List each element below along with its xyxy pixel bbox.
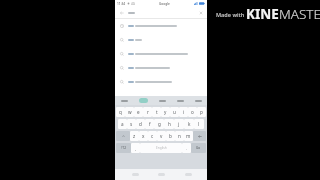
staticText: u [173,109,176,115]
staticText: ?12 [121,146,127,150]
button[interactable]: c [148,131,157,141]
button[interactable] [153,96,171,105]
button[interactable] [115,33,207,47]
button[interactable] [189,96,207,105]
button[interactable]: e [134,107,143,117]
staticText: m [186,133,191,139]
staticText: q [119,109,122,115]
staticText: c [151,133,154,139]
staticText: KINE [246,5,279,23]
staticText: Go [196,146,201,150]
staticText: MASTER [279,5,320,23]
button[interactable]: q [116,107,125,117]
button[interactable]: p [197,107,206,117]
button[interactable]: f [145,119,154,129]
staticText: Google [159,2,170,6]
staticText: a [121,121,124,127]
button[interactable]: . [182,143,191,153]
staticText: x [142,133,145,139]
staticText: , [135,146,137,151]
button[interactable]: Back [118,9,125,16]
button[interactable]: t [152,107,161,117]
button[interactable]: Shift [116,131,130,141]
button[interactable] [128,7,197,18]
button[interactable]: v [157,131,166,141]
button[interactable]: w [125,107,134,117]
button[interactable]: j [174,119,184,129]
staticText: t [156,109,158,115]
staticText: p [200,109,203,115]
staticText: b [169,133,172,139]
staticText: j [178,121,180,127]
staticText: e [137,109,140,115]
staticText: l [198,121,200,127]
button[interactable] [115,19,207,33]
staticText: d [139,121,142,127]
staticText: 4G [131,2,135,6]
staticText: 11:34 [117,2,126,6]
staticText: o [191,109,194,115]
button[interactable]: i [179,107,188,117]
button[interactable]: k [184,119,194,129]
button[interactable]: u [170,107,179,117]
button[interactable]: Symbols [116,143,131,153]
button[interactable]: y [161,107,170,117]
button[interactable]: Back [181,170,195,179]
button[interactable]: Recents [128,170,142,179]
button[interactable]: a [118,119,127,129]
button[interactable] [115,96,134,105]
staticText: y [164,109,167,115]
staticText: s [130,121,133,127]
button[interactable]: Space [140,143,182,153]
button[interactable]: o [188,107,197,117]
staticText: i [183,109,185,115]
staticText: z [133,133,136,139]
staticText: n [178,133,181,139]
button[interactable]: Home [154,170,168,179]
staticText: r [147,109,149,115]
button[interactable]: Backspace [193,131,206,141]
button[interactable]: Search [191,143,206,153]
button[interactable] [115,47,207,61]
button[interactable]: x [139,131,148,141]
button[interactable]: r [143,107,152,117]
button[interactable] [171,96,189,105]
staticText: h [168,121,171,127]
staticText: k [188,121,191,127]
staticText: English [156,146,167,150]
button[interactable]: b [166,131,175,141]
button[interactable] [115,75,207,89]
button[interactable]: d [136,119,145,129]
button[interactable]: , [131,143,140,153]
button[interactable]: l [194,119,204,129]
button[interactable]: z [130,131,139,141]
button[interactable]: m [184,131,193,141]
staticText: f [149,121,151,127]
button[interactable]: n [175,131,184,141]
button[interactable] [134,96,153,105]
button[interactable]: h [164,119,174,129]
staticText: g [158,121,161,127]
staticText: w [128,109,132,115]
staticText: . [186,146,188,151]
button[interactable]: s [127,119,136,129]
staticText: v [160,133,163,139]
button[interactable]: Clear search [197,9,204,16]
button[interactable]: g [154,119,164,129]
staticText: Made with [216,11,246,18]
button[interactable] [115,61,207,75]
